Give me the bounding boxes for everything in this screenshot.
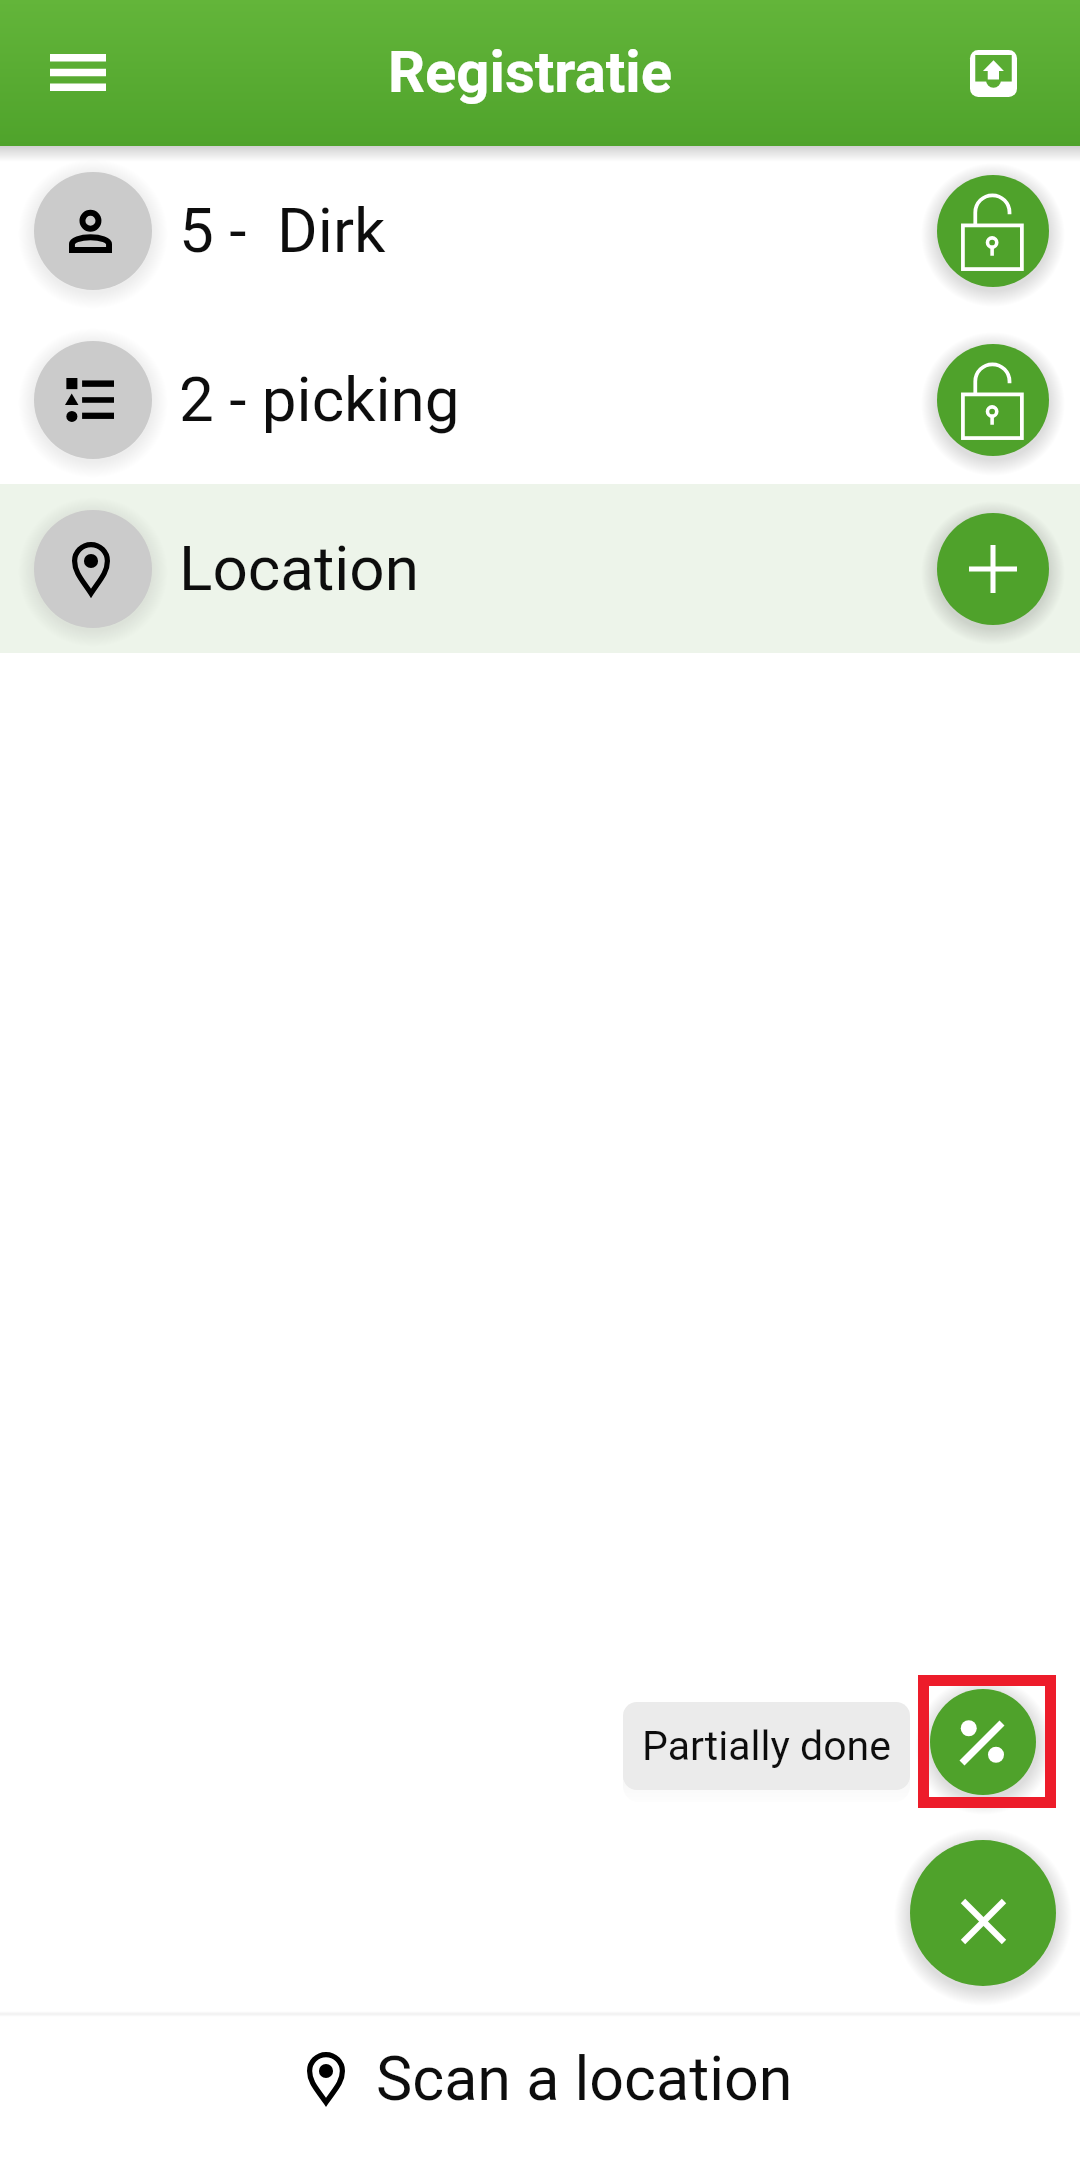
staticText: 5 - Dirk <box>179 194 386 267</box>
staticText: Partially done <box>642 1722 891 1770</box>
staticText: Registratie <box>388 38 673 106</box>
button[interactable]: Cancel <box>910 1840 1056 1986</box>
button[interactable]: Location <box>0 484 1080 653</box>
button[interactable]: Add <box>937 513 1049 625</box>
button[interactable]: 2 - picking <box>0 315 1080 484</box>
button[interactable]: Scan a location <box>0 2012 1080 2160</box>
button[interactable]: Partially done <box>930 1689 1036 1795</box>
button[interactable]: Partially done <box>623 1702 910 1790</box>
button[interactable]: 5 - Dirk <box>0 146 1080 315</box>
staticText: 2 - picking <box>179 363 460 436</box>
staticText: Location <box>179 532 419 605</box>
staticText: Scan a location <box>376 2043 793 2114</box>
button[interactable]: Unlock <box>937 344 1049 456</box>
button[interactable]: Open in inbox <box>943 23 1043 123</box>
button[interactable]: Unlock <box>937 175 1049 287</box>
button[interactable]: Menu <box>28 23 128 123</box>
